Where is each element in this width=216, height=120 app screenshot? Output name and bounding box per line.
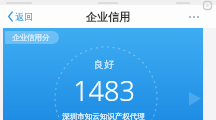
button[interactable]: 企业信用分 xyxy=(3,28,203,120)
staticText: 企业信用 xyxy=(86,10,130,24)
staticText: 企业信用分 xyxy=(12,33,50,42)
button[interactable]: Screenshot xyxy=(202,0,213,11)
staticText: 返回 xyxy=(15,11,33,22)
button[interactable]: 返回 xyxy=(6,9,35,24)
button[interactable]: More options xyxy=(186,11,202,23)
staticText: 1483 xyxy=(73,72,135,109)
button[interactable]: 企业信用分 xyxy=(5,31,59,44)
staticText: 良好 xyxy=(94,58,114,71)
staticText: 深圳市知云知识产权代理 xyxy=(62,112,145,120)
